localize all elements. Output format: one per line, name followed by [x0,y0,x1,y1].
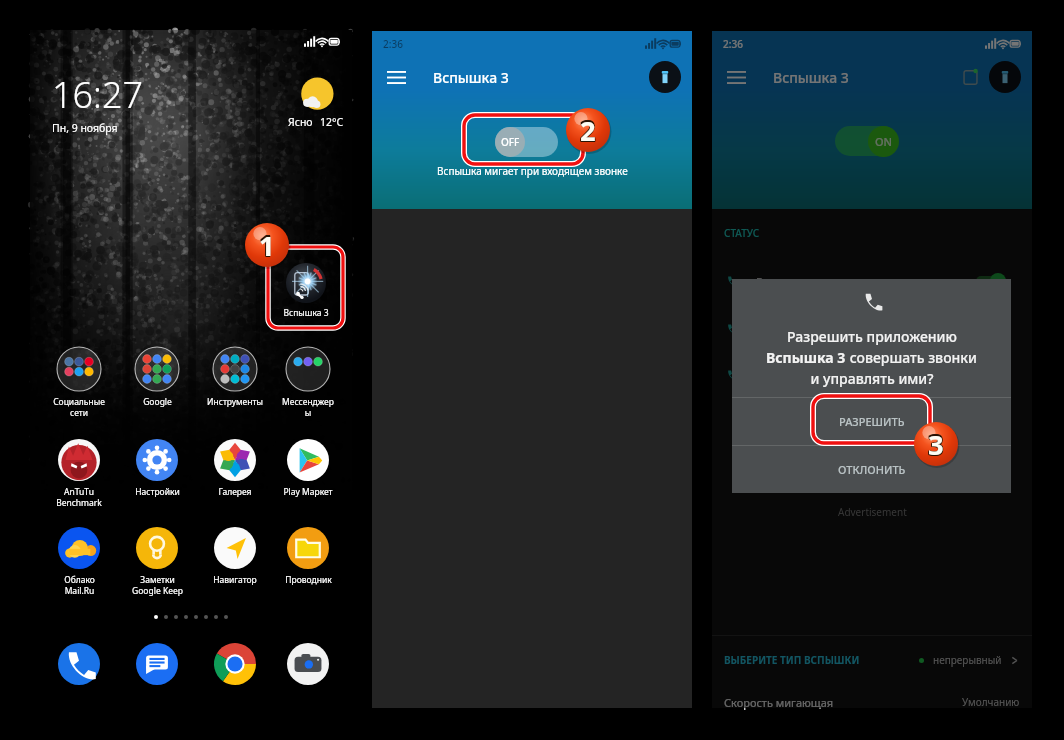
staticText: СТАТУС [724,226,760,240]
staticText: совершать звонки [846,348,978,367]
staticText: Разрешить приложению [787,327,957,346]
staticText: непрерывный [933,653,1002,667]
staticText: В входящем звонке на [756,274,877,289]
staticText: 3 [929,426,945,463]
staticText: 1 [258,228,274,265]
button[interactable]: App [274,642,342,686]
staticText: Скорость мигающая [724,695,834,710]
button[interactable] [835,126,898,156]
button[interactable]: App [40,642,118,686]
staticText: Инструменты [207,396,263,408]
staticText: 2 [580,113,596,150]
staticText: ВЫБЕРИТЕ ТИП ВСПЫШКИ [724,653,860,667]
button[interactable]: Уведомления [724,355,1020,395]
button[interactable]: Когда приходит SMS [724,309,1020,349]
staticText: 2:36 [383,37,403,51]
button[interactable]: Help [958,65,982,89]
button[interactable]: РАЗРЕШИТЬ [732,398,1011,445]
button[interactable]: App [118,642,196,686]
staticText: 3 [928,425,944,462]
button[interactable]: Навигатор [196,527,274,586]
button[interactable]: Облако Mail.Ru [40,527,118,596]
staticText: 2 [579,111,595,148]
button[interactable]: Инструменты [196,346,274,408]
staticText: Google [143,396,172,408]
button[interactable]: ОТКЛОНИТЬ [732,446,1011,493]
staticText: 1 [260,227,276,264]
staticText: Пн, 9 ноября [52,121,118,135]
button[interactable]: Menu [383,64,409,90]
staticText: 1 [259,228,275,265]
staticText: 1 [259,227,275,264]
staticText: Облако Mail.Ru [64,574,95,596]
staticText: Play Маркет [283,486,333,498]
button[interactable]: Вспышка 3 [268,247,343,328]
button[interactable]: В входящем звонке на [724,261,1020,301]
staticText: 1 [259,226,275,263]
staticText: 16:27 [52,70,144,119]
button[interactable]: AnTuTu Benchmark [40,439,118,508]
staticText: 3 [928,427,944,464]
staticText: 1 [258,227,274,264]
staticText: Вспышка мигает при входящем звонке [437,164,628,178]
button[interactable]: Flashlight [649,61,681,93]
button[interactable]: Flashlight [989,61,1021,93]
staticText: 1 [260,226,276,263]
staticText: AnTuTu Benchmark [56,486,102,508]
staticText: ОТКЛОНИТЬ [838,462,906,477]
staticText: 3 [927,426,943,463]
staticText: OFF [501,135,520,149]
staticText: Социальные сети [53,396,105,418]
staticText: 2 [580,112,596,149]
staticText: Вспышка 3 [773,68,849,87]
staticText: 2 [581,112,597,149]
staticText: Уведомления [756,368,829,383]
staticText: 1 [260,228,276,265]
staticText: 12°C [320,115,344,129]
staticText: Мессенджер ы [282,396,334,418]
staticText: Ясно [288,115,313,129]
button[interactable]: Социальные сети [40,346,118,418]
button[interactable]: App [196,642,274,686]
staticText: 2 [581,113,597,150]
button[interactable]: Menu [723,64,749,90]
staticText: 3 [929,427,945,464]
staticText: Проводник [285,574,332,586]
staticText: 3 [928,426,944,463]
staticText: Галерея [218,486,252,498]
staticText: Умолчанию [962,695,1020,709]
staticText: 2 [580,111,596,148]
button[interactable]: Проводник [274,527,342,586]
button[interactable]: Google [118,346,196,408]
staticText: Настройки [135,486,180,498]
staticText: Вспышка 3 [433,68,509,87]
staticText: 3 [927,425,943,462]
button[interactable]: Заметки Google Keep [118,527,196,596]
staticText: 2:36 [723,37,743,51]
staticText: РАЗРЕШИТЬ [839,414,905,429]
button[interactable]: Мессенджер ы [274,346,342,418]
staticText: 3 [927,427,943,464]
staticText: ON [875,134,893,149]
staticText: и управлять ими? [810,369,934,388]
staticText: 1 [258,226,274,263]
button[interactable]: ВЫБЕРИТЕ ТИП ВСПЫШКИ [724,642,1020,678]
staticText: Advertisement [838,505,907,519]
button[interactable]: Скорость мигающая [724,685,1020,719]
staticText: 2 [581,111,597,148]
button[interactable]: Play Маркет [274,439,342,498]
staticText: Навигатор [213,574,257,586]
button[interactable] [495,127,558,157]
staticText: Когда приходит SMS [756,322,865,337]
staticText: Заметки Google Keep [132,574,183,596]
staticText: 2 [579,112,595,149]
staticText: 3 [929,425,945,462]
button[interactable]: Настройки [118,439,196,498]
staticText: 2 [579,113,595,150]
button[interactable]: Галерея [196,439,274,498]
staticText: Вспышка 3 [766,348,846,367]
staticText: Вспышка 3 [283,307,329,319]
